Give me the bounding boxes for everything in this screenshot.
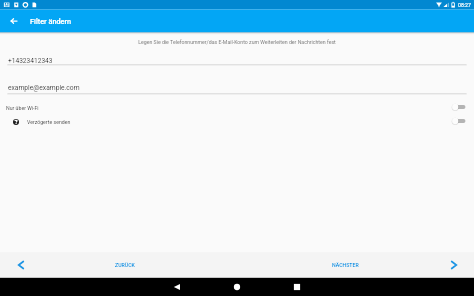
- staticText: Nur über Wi-Fi: [6, 105, 39, 111]
- button[interactable]: Recent apps: [267, 278, 327, 296]
- button[interactable]: NÄCHSTER: [237, 252, 474, 278]
- other: Hilfe: [13, 119, 19, 125]
- staticText: Verzögerte senden: [27, 119, 71, 125]
- button[interactable]: example@example.com: [0, 80, 474, 96]
- button[interactable]: Home: [207, 278, 267, 296]
- staticText: Filter ändern: [30, 17, 72, 26]
- staticText: ZURÜCK: [115, 262, 135, 268]
- staticText: 08:27: [458, 2, 471, 8]
- button[interactable]: ZURÜCK: [0, 252, 237, 278]
- button[interactable]: Nur über Wi-Fi: [452, 100, 468, 114]
- staticText: NÄCHSTER: [332, 262, 359, 268]
- staticText: example@example.com: [8, 84, 80, 92]
- staticText: +14323412343: [8, 57, 53, 65]
- button[interactable]: Nur über Wi-Fi: [0, 101, 474, 115]
- button[interactable]: +14323412343: [0, 53, 474, 69]
- button[interactable]: Hilfe: [0, 115, 474, 129]
- staticText: Legen Sie die Telefonnummer/das E-Mail-K…: [0, 39, 474, 45]
- button[interactable]: Verzögerte senden: [452, 114, 468, 128]
- button[interactable]: Back: [147, 278, 207, 296]
- button[interactable]: Zurück: [3, 10, 25, 32]
